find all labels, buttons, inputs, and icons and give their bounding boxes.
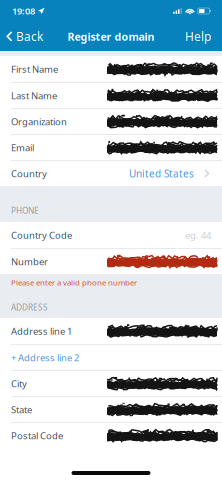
button[interactable]: State (0, 396, 222, 422)
staticText: Back (16, 28, 43, 45)
button[interactable]: Country (0, 160, 222, 186)
staticText: + Address line 2 (11, 351, 79, 364)
button[interactable]: Last Name (0, 82, 222, 108)
button[interactable]: + Address line 2 (0, 344, 222, 370)
staticText: Country (11, 167, 47, 180)
button[interactable]: Back (0, 22, 51, 51)
button[interactable]: Postal Code (0, 422, 222, 448)
staticText: Postal Code (11, 429, 63, 442)
button[interactable]: Organization (0, 108, 222, 134)
staticText: eg. 44 (185, 229, 211, 241)
staticText: City (11, 377, 27, 390)
staticText: Register domain (67, 29, 154, 44)
staticText: ADDRESS (11, 302, 48, 313)
staticText: Organization (11, 115, 67, 128)
staticText: State (11, 403, 32, 416)
button[interactable]: First Name (0, 56, 222, 82)
button[interactable]: Number (0, 248, 222, 274)
staticText: Email (11, 141, 34, 154)
staticText: Please enter a valid phone number (11, 277, 137, 288)
button[interactable]: Address line 1 (0, 318, 222, 344)
button[interactable]: Email (0, 134, 222, 160)
staticText: Last Name (11, 89, 57, 102)
staticText: PHONE (11, 205, 39, 216)
staticText: Country Code (11, 229, 72, 241)
staticText: Number (11, 255, 48, 268)
staticText: Help (185, 28, 211, 45)
staticText: United States (129, 167, 194, 180)
button[interactable]: Help (174, 22, 222, 51)
staticText: First Name (11, 63, 58, 75)
button[interactable]: City (0, 370, 222, 396)
staticText: Address line 1 (11, 325, 72, 337)
button[interactable]: Country Code (0, 222, 222, 248)
staticText: 19:08 (12, 5, 35, 17)
